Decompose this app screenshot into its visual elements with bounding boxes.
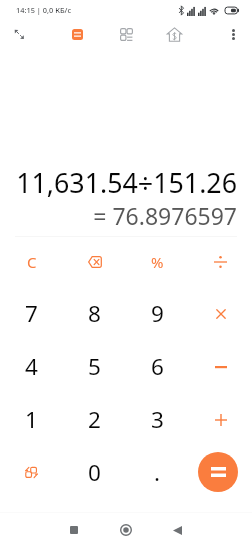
button[interactable]: 9 <box>126 287 189 340</box>
staticText: . <box>154 457 161 488</box>
button[interactable]: Equals <box>198 452 238 492</box>
button[interactable]: 2 <box>63 393 126 446</box>
button[interactable]: 5 <box>63 340 126 393</box>
staticText: 6 <box>151 351 164 382</box>
staticText: 2 <box>88 404 101 435</box>
button[interactable]: Mortgage calculator <box>158 18 190 50</box>
staticText: C <box>27 252 37 272</box>
button[interactable]: 4 <box>0 340 63 393</box>
button[interactable]: 6 <box>126 340 189 393</box>
button[interactable]: Divide <box>189 235 252 288</box>
staticText: = 76.8976597 <box>0 200 237 231</box>
button[interactable]: 0 <box>63 446 126 499</box>
button[interactable]: Recents <box>58 514 90 545</box>
staticText: 8 <box>88 298 101 329</box>
staticText: 3 <box>151 404 164 435</box>
staticText: 5 <box>88 351 101 382</box>
button[interactable]: Backspace <box>63 235 126 288</box>
button[interactable]: 8 <box>63 287 126 340</box>
button[interactable]: C <box>0 235 63 288</box>
staticText: 7 <box>25 298 38 329</box>
staticText: 14:15 | 0,0 КБ/с <box>16 5 72 15</box>
staticText: 4 <box>25 351 38 382</box>
button[interactable]: Convert <box>0 446 63 499</box>
button[interactable]: Multiply <box>189 287 252 340</box>
staticText: % <box>151 252 164 272</box>
button[interactable]: Unit converter <box>110 18 142 50</box>
staticText: 11,631.54÷151.26 <box>0 164 237 201</box>
button[interactable]: More options <box>217 18 249 50</box>
button[interactable]: % <box>126 235 189 288</box>
staticText: 0 <box>88 457 101 488</box>
button[interactable]: . <box>126 446 189 499</box>
staticText: 1 <box>25 404 38 435</box>
button[interactable]: Plus <box>189 393 252 446</box>
staticText: 9 <box>151 298 164 329</box>
button[interactable]: Calculator <box>61 18 93 50</box>
button[interactable]: 3 <box>126 393 189 446</box>
button[interactable]: Minus <box>189 340 252 393</box>
button[interactable]: Back <box>161 514 193 545</box>
button[interactable]: Collapse <box>3 18 35 50</box>
button[interactable]: 7 <box>0 287 63 340</box>
button[interactable]: Home <box>110 514 142 545</box>
button[interactable]: 1 <box>0 393 63 446</box>
